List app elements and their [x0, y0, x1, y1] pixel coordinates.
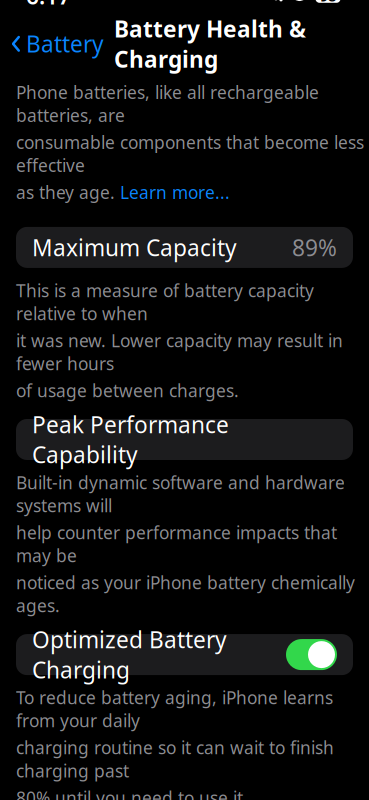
staticText: 98 — [320, 0, 336, 6]
button[interactable]: Battery — [10, 23, 104, 65]
staticText: Built-in dynamic software and hardware s… — [16, 471, 345, 517]
button[interactable]: Optimized Battery Charging — [16, 634, 353, 675]
staticText: Maximum Capacity — [32, 232, 237, 262]
button[interactable]: Maximum Capacity — [16, 227, 353, 268]
staticText: as they age. — [16, 181, 120, 204]
staticText: consumable components that become less e… — [16, 131, 364, 177]
staticText: Phone batteries, like all rechargeable b… — [16, 81, 319, 127]
staticText: noticed as your iPhone battery chemicall… — [16, 571, 355, 617]
staticText: To reduce battery aging, iPhone learns f… — [16, 686, 333, 732]
staticText: charging routine so it can wait to finis… — [16, 736, 334, 782]
staticText: Peak Performance Capability — [32, 409, 229, 470]
staticText: Learn more... — [120, 181, 230, 204]
staticText: This is a measure of battery capacity re… — [16, 279, 314, 325]
staticText: help counter performance impacts that ma… — [16, 521, 337, 567]
staticText: Optimized Battery Charging — [32, 624, 227, 685]
staticText: 89% — [292, 232, 337, 262]
staticText: Battery Health & Charging — [114, 14, 306, 74]
button[interactable]: Learn more... — [120, 181, 230, 204]
staticText: of usage between charges. — [16, 379, 239, 402]
staticText: Battery — [26, 29, 104, 59]
button[interactable]: Peak Performance Capability — [16, 419, 353, 460]
staticText: 80% until you need to use it. — [16, 786, 248, 800]
staticText: 6:17 — [26, 0, 71, 11]
staticText: it was new. Lower capacity may result in… — [16, 329, 343, 375]
